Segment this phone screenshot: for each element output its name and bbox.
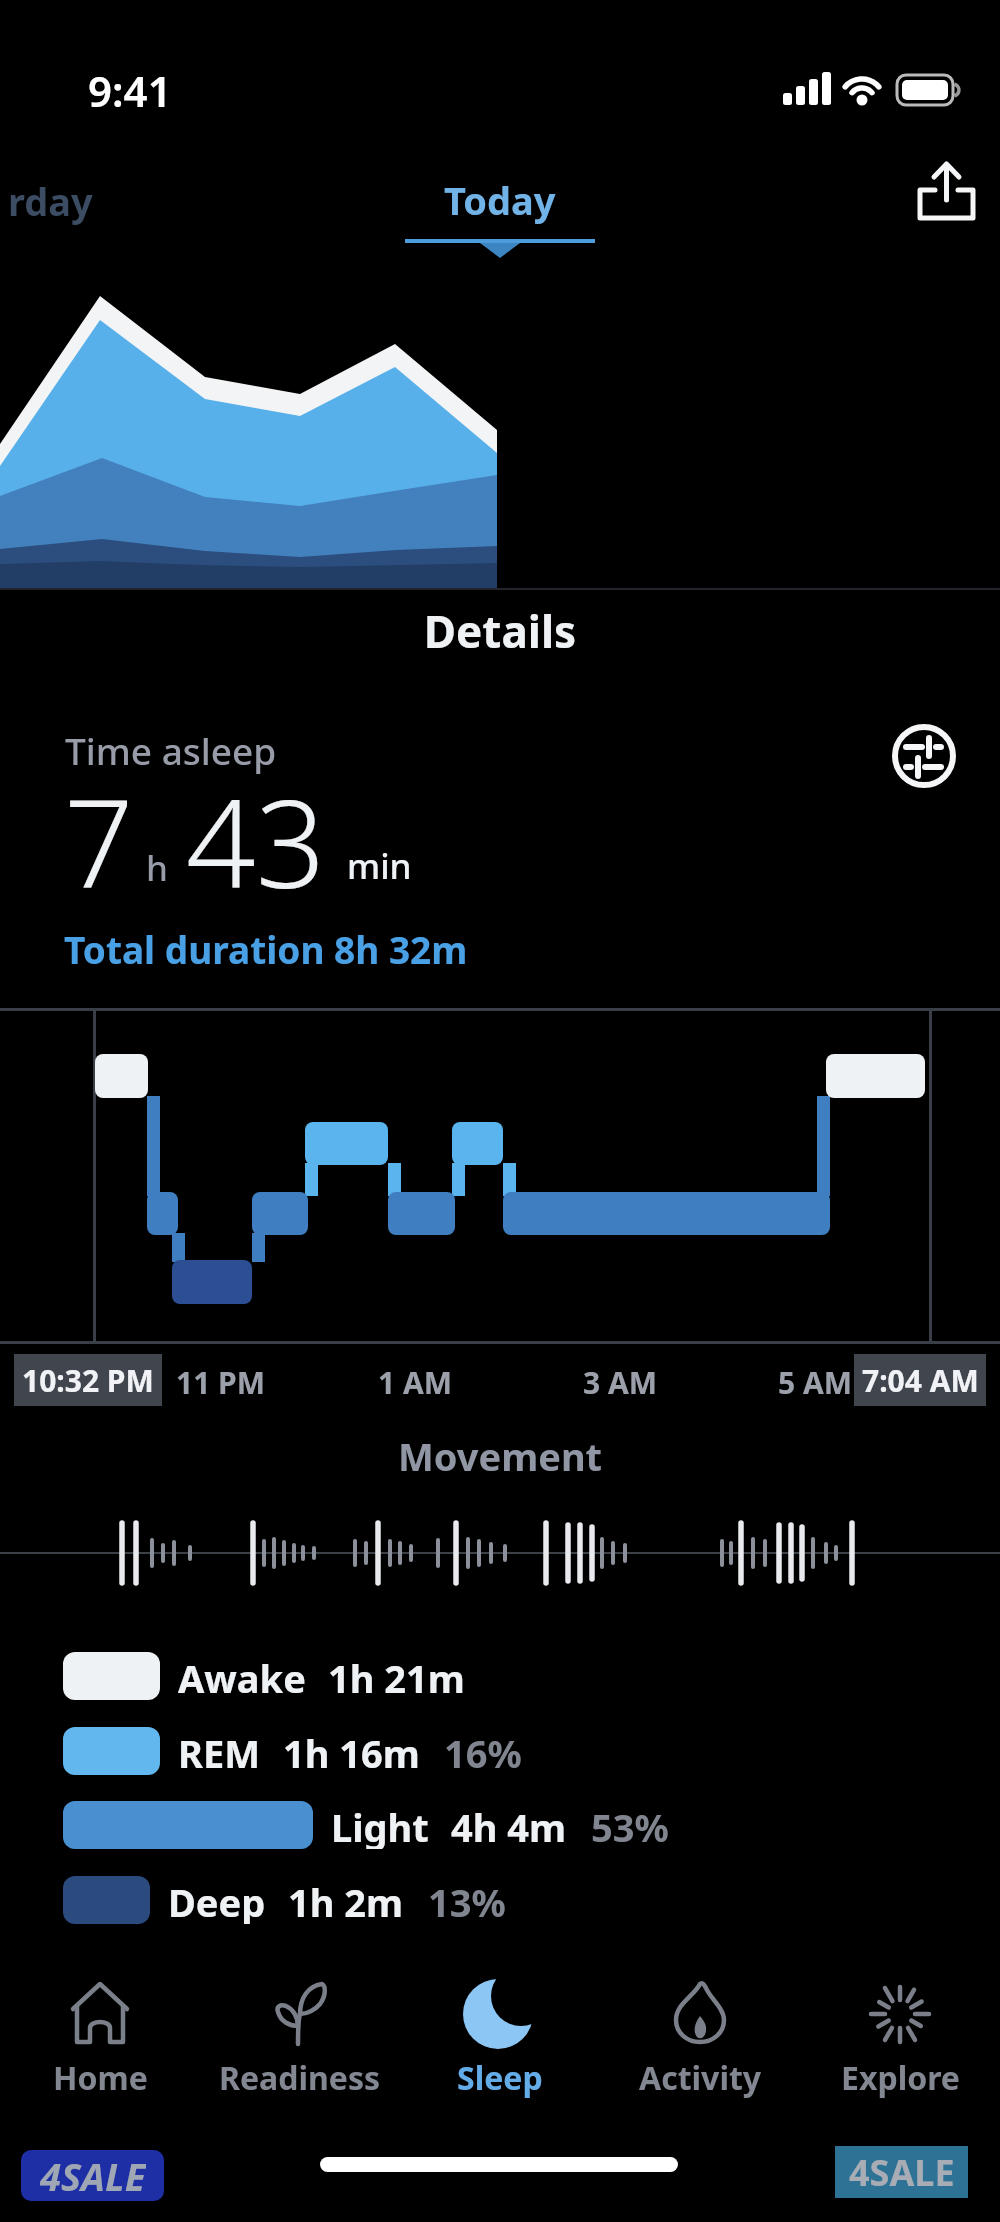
staticText: Total duration 8h 32m bbox=[64, 924, 468, 974]
staticText: 43 bbox=[186, 758, 326, 924]
staticText: 4h 4m bbox=[451, 1801, 567, 1849]
staticText: h bbox=[146, 844, 168, 892]
button[interactable]: Home bbox=[5, 1968, 195, 2103]
button[interactable]: Activity bbox=[605, 1968, 795, 2103]
staticText: 1h 2m bbox=[288, 1876, 404, 1924]
staticText: Light bbox=[331, 1801, 429, 1849]
staticText: REM bbox=[178, 1727, 261, 1775]
staticText: 3 AM bbox=[583, 1362, 658, 1403]
staticText: Home bbox=[53, 2056, 148, 2100]
staticText: Deep bbox=[168, 1876, 266, 1924]
staticText: 7:04 AM bbox=[862, 1360, 979, 1401]
staticText: 9:41 bbox=[88, 62, 172, 119]
staticText: Time asleep bbox=[65, 725, 277, 775]
staticText: Movement bbox=[0, 1430, 1000, 1482]
staticText: Details bbox=[0, 601, 1000, 661]
staticText: Explore bbox=[841, 2056, 960, 2100]
staticText: 7 bbox=[64, 758, 134, 924]
button[interactable] bbox=[905, 150, 990, 240]
staticText: 1h 16m bbox=[283, 1727, 420, 1775]
staticText: 11 PM bbox=[176, 1362, 266, 1403]
button[interactable]: Today bbox=[405, 160, 595, 260]
staticText: 16% bbox=[444, 1727, 522, 1775]
staticText: Activity bbox=[639, 2056, 762, 2100]
staticText: Sleep bbox=[457, 2056, 543, 2100]
staticText: Awake bbox=[178, 1652, 306, 1700]
staticText: 4SALE bbox=[40, 2150, 146, 2201]
staticText: 10:32 PM bbox=[22, 1360, 154, 1401]
button[interactable]: Explore bbox=[805, 1968, 995, 2103]
button[interactable]: Sleep bbox=[405, 1968, 595, 2103]
staticText: 1 AM bbox=[378, 1362, 453, 1403]
button[interactable]: Readiness bbox=[205, 1968, 395, 2103]
staticText: 4SALE bbox=[849, 2148, 955, 2197]
staticText: Readiness bbox=[219, 2056, 381, 2100]
staticText: 5 AM bbox=[778, 1362, 853, 1403]
staticText: 13% bbox=[428, 1876, 506, 1924]
button[interactable] bbox=[880, 712, 970, 802]
staticText: min bbox=[347, 842, 412, 890]
staticText: Today bbox=[444, 174, 556, 226]
staticText: 53% bbox=[591, 1801, 669, 1849]
button[interactable]: rday bbox=[8, 175, 93, 227]
staticText: 1h 21m bbox=[328, 1652, 465, 1700]
